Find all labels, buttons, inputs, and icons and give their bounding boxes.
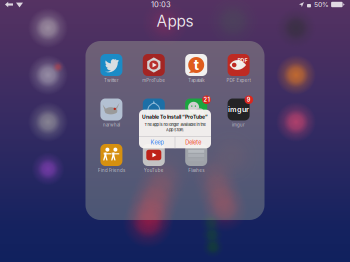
staticText: The app is no longer available in the bbox=[144, 122, 205, 127]
button[interactable]: Keep bbox=[139, 137, 175, 148]
button[interactable]: PDF bbox=[217, 53, 260, 83]
staticText: Flashes bbox=[188, 168, 204, 173]
button[interactable]: 21 bbox=[175, 98, 217, 127]
button[interactable]: Delete bbox=[175, 137, 211, 148]
button[interactable]: Find Friends bbox=[90, 143, 133, 173]
staticText: imgur bbox=[232, 122, 245, 128]
button[interactable] bbox=[133, 98, 175, 127]
staticText: narwhal bbox=[103, 122, 120, 128]
staticText: Find Friends bbox=[98, 168, 125, 173]
staticText: YouTube bbox=[144, 168, 164, 173]
button[interactable]: Flashes bbox=[175, 143, 217, 173]
staticText: 21 bbox=[203, 96, 209, 103]
staticText: 50% bbox=[314, 0, 329, 9]
staticText: Apps bbox=[156, 12, 193, 31]
staticText: PDF Expert bbox=[227, 78, 251, 83]
staticText: Delete bbox=[185, 139, 201, 146]
staticText: App Store. bbox=[166, 127, 184, 132]
button[interactable]: YouTube bbox=[133, 143, 175, 173]
staticText: imgur bbox=[228, 105, 249, 114]
staticText: Keep bbox=[150, 139, 163, 146]
staticText: Tapatalk bbox=[188, 78, 204, 83]
button[interactable]: Back bbox=[5, 0, 13, 8]
button[interactable]: mProTube bbox=[133, 53, 175, 83]
staticText: Twitter bbox=[104, 78, 119, 83]
staticText: 10:03 bbox=[151, 0, 171, 9]
button[interactable]: t bbox=[175, 53, 217, 83]
button[interactable]: imgur bbox=[217, 98, 260, 127]
staticText: 9 bbox=[247, 96, 251, 103]
staticText: Unable To Install “ProTube” bbox=[142, 114, 208, 120]
staticText: PDF bbox=[238, 57, 248, 63]
staticText: mProTube bbox=[142, 78, 165, 83]
staticText: t bbox=[194, 56, 199, 73]
button[interactable]: Twitter bbox=[90, 53, 133, 83]
button[interactable]: narwhal bbox=[90, 98, 133, 127]
